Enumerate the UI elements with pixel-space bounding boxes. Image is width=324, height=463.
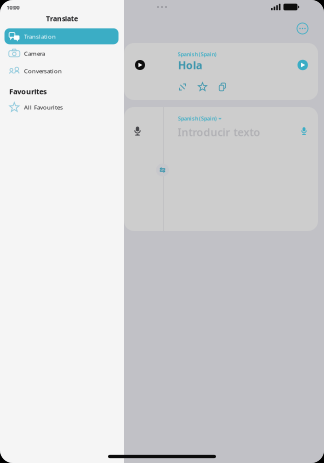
button[interactable]: Expand [178,82,187,91]
button[interactable]: Add to favourites [198,82,207,91]
staticText: 10:00 [6,4,19,11]
button[interactable]: Dictate in Spanish [134,126,141,136]
staticText: All Favourites [24,103,63,111]
button[interactable]: All Favourites [4,99,118,115]
staticText: Camera [24,49,45,57]
button[interactable]: Copy [218,82,227,91]
button[interactable]: Swap languages [156,163,169,176]
button[interactable]: Dictate translation [301,127,307,135]
staticText: Spanish (Spain) [178,51,217,58]
staticText: Translation [24,32,56,40]
button[interactable]: Play translation [297,60,308,70]
staticText: Conversation [24,67,62,75]
staticText: Translate [46,14,78,23]
button[interactable]: Camera [4,45,118,61]
button[interactable]: More options [295,21,309,35]
staticText: Favourites [9,87,47,96]
button[interactable]: Play original [135,60,145,70]
staticText: Introducir texto [177,125,260,139]
staticText: Hola [178,58,202,72]
button[interactable]: Conversation [4,63,118,79]
button[interactable]: Translation [4,28,118,44]
staticText: Spanish (Spain) [178,115,217,122]
